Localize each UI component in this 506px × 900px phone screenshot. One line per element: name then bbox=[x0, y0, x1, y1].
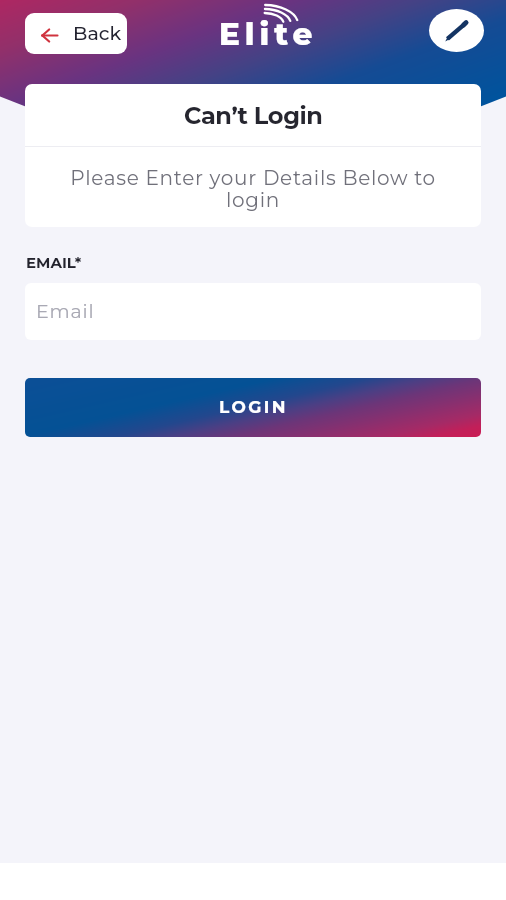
button[interactable]: Back bbox=[25, 13, 127, 54]
staticText: Elite bbox=[219, 15, 318, 53]
button[interactable]: Edit bbox=[429, 9, 484, 52]
staticText: EMAIL* bbox=[26, 253, 82, 271]
button[interactable]: Email bbox=[25, 283, 481, 340]
button[interactable]: LOGIN bbox=[25, 378, 481, 437]
staticText: Please Enter your Details Below to login bbox=[55, 166, 451, 212]
staticText: Back bbox=[73, 22, 122, 45]
staticText: LOGIN bbox=[219, 397, 288, 418]
staticText: Can’t Login bbox=[184, 101, 323, 130]
staticText: Email bbox=[36, 300, 95, 323]
